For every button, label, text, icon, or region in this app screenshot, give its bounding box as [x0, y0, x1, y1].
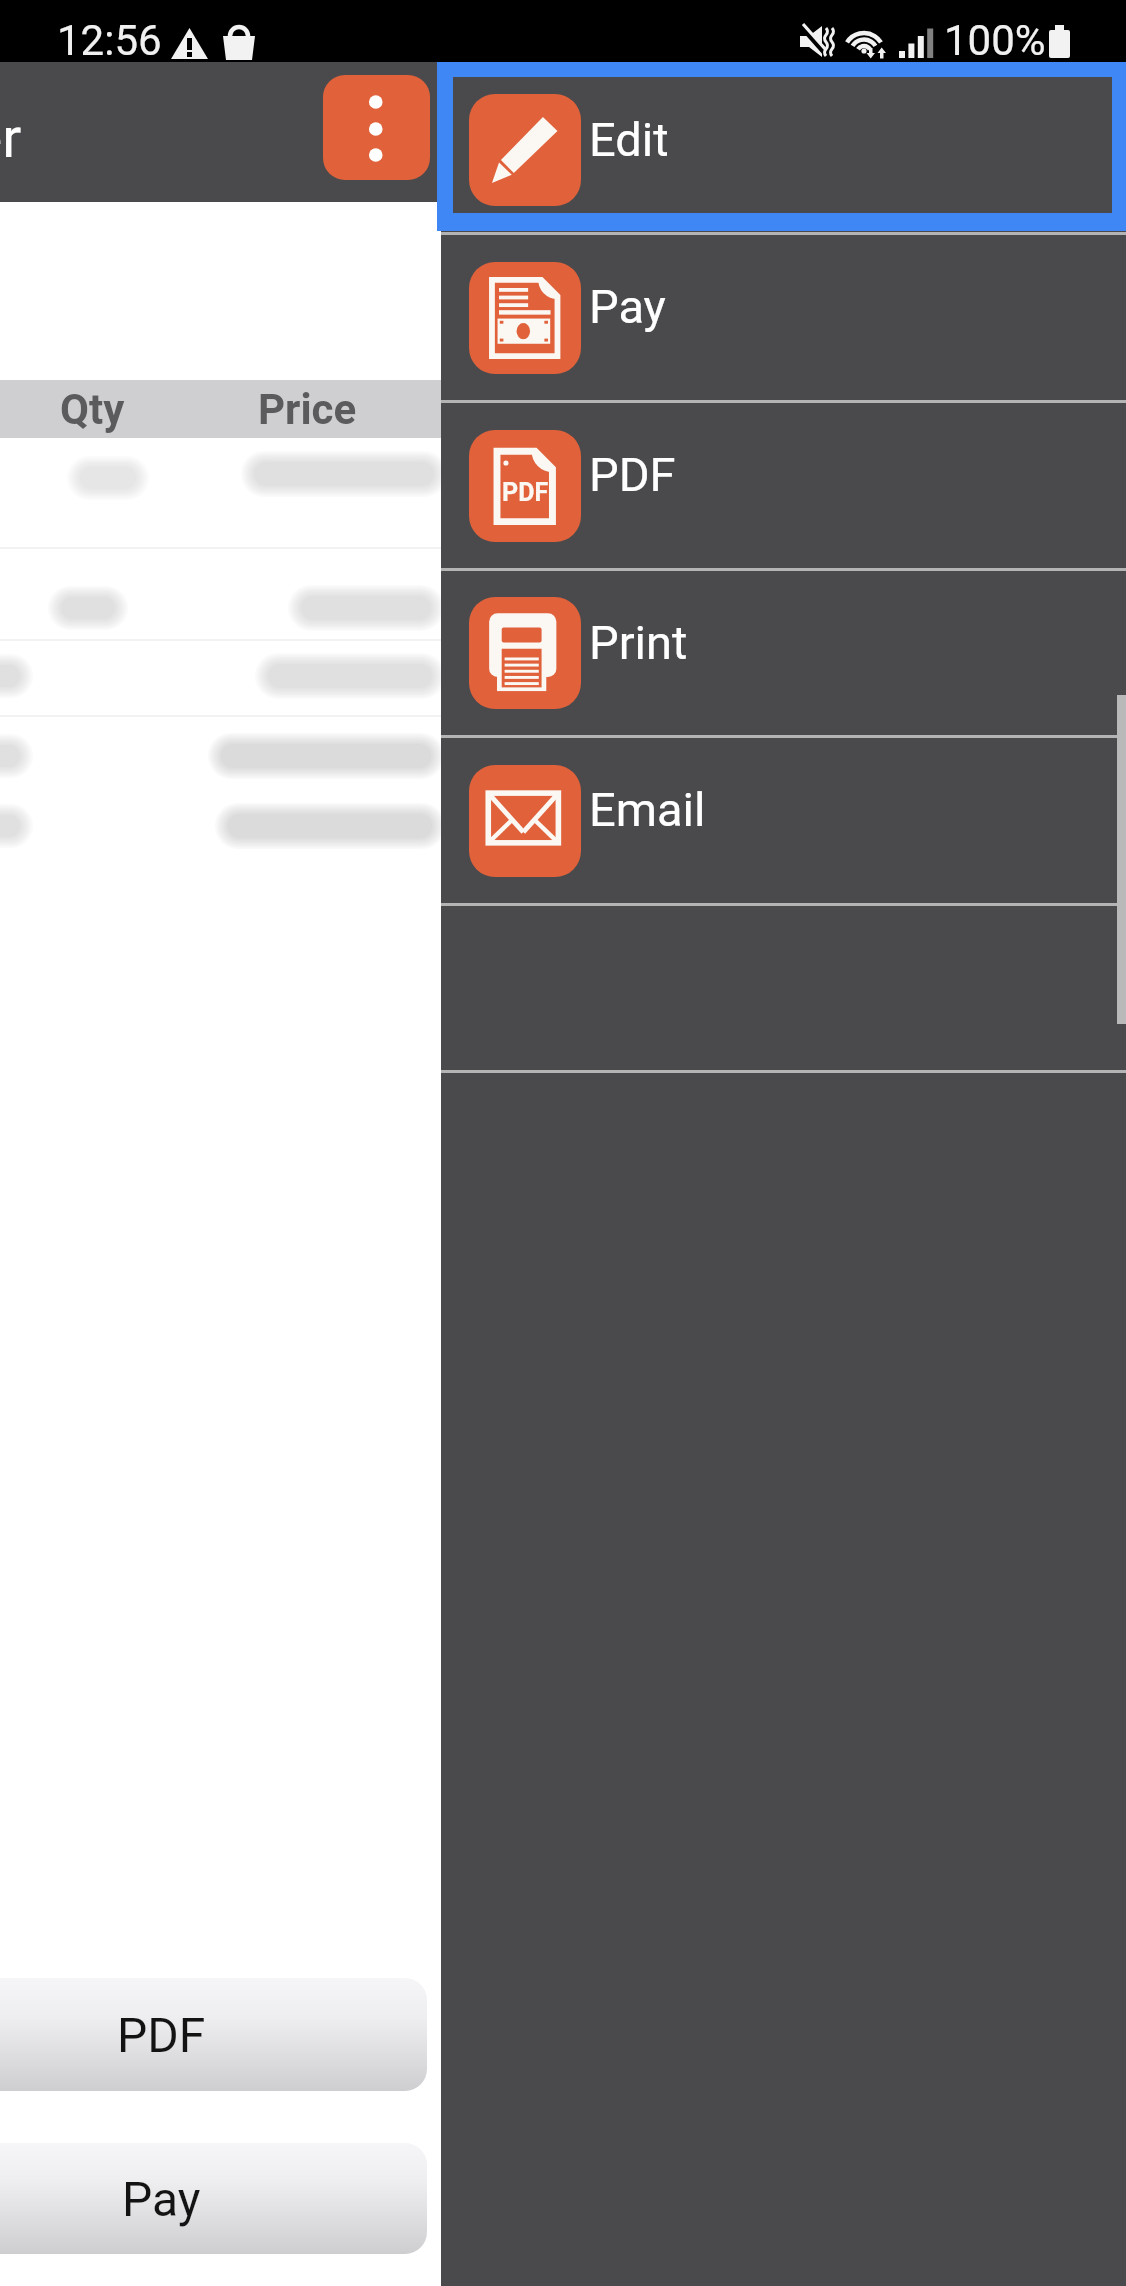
staticText: PDF [502, 478, 549, 507]
staticText: Email [589, 782, 706, 837]
button[interactable]: PDF [0, 1978, 427, 2091]
staticText: PDF [589, 447, 676, 502]
button[interactable]: Pay [0, 2143, 427, 2254]
staticText: 12:56 [57, 16, 162, 65]
button[interactable]: More options [323, 75, 430, 180]
button[interactable]: Pay [441, 235, 1126, 400]
button[interactable]: Print [441, 571, 1126, 735]
staticText: PDF [117, 2007, 206, 2063]
staticText: Order [0, 105, 22, 171]
button[interactable]: Email [441, 738, 1126, 903]
staticText: Print [589, 615, 688, 670]
button[interactable]: PDF [441, 403, 1126, 568]
staticText: 100% [944, 16, 1046, 65]
staticText: Edit [589, 112, 669, 167]
staticText: Pay [122, 2171, 201, 2227]
staticText: Qty [60, 385, 125, 434]
staticText: Price [258, 385, 357, 434]
staticText: Pay [589, 279, 666, 334]
button[interactable]: Edit [453, 77, 1112, 213]
